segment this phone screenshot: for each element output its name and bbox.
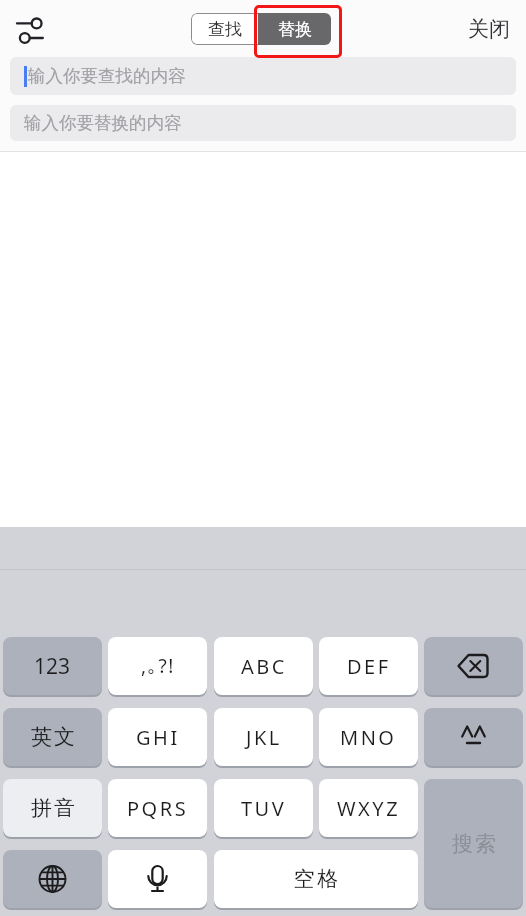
- staticText: 拼音: [30, 795, 76, 821]
- staticText: 英文: [30, 724, 76, 750]
- button[interactable]: GHI: [108, 708, 207, 766]
- button[interactable]: ,｡?!: [108, 637, 207, 695]
- button[interactable]: 替换: [258, 13, 331, 45]
- staticText: 关闭: [468, 16, 510, 42]
- staticText: 搜索: [451, 831, 497, 857]
- staticText: ABC: [241, 653, 287, 680]
- button[interactable]: ABC: [214, 637, 313, 695]
- staticText: DEF: [347, 653, 391, 680]
- button[interactable]: 查找: [191, 13, 259, 45]
- button[interactable]: MNO: [319, 708, 418, 766]
- button[interactable]: 输入你要替换的内容: [10, 105, 516, 141]
- staticText: GHI: [136, 724, 180, 751]
- staticText: PQRS: [127, 795, 189, 822]
- staticText: 输入你要替换的内容: [24, 112, 182, 134]
- button[interactable]: [424, 708, 523, 766]
- staticText: MNO: [340, 724, 397, 751]
- button[interactable]: [3, 850, 102, 908]
- staticText: JKL: [246, 724, 282, 751]
- staticText: 查找: [208, 19, 242, 40]
- button[interactable]: 关闭: [448, 11, 510, 46]
- button[interactable]: DEF: [319, 637, 418, 695]
- button[interactable]: [108, 850, 207, 908]
- staticText: 输入你要查找的内容: [28, 65, 186, 87]
- staticText: 替换: [278, 19, 312, 40]
- staticText: 123: [34, 652, 71, 681]
- button[interactable]: [424, 637, 523, 695]
- button[interactable]: 空格: [214, 850, 418, 908]
- button[interactable]: TUV: [214, 779, 313, 837]
- staticText: WXYZ: [337, 795, 401, 822]
- button[interactable]: 输入你要查找的内容: [10, 57, 516, 95]
- button[interactable]: 英文: [3, 708, 102, 766]
- button[interactable]: 拼音: [3, 779, 102, 837]
- button[interactable]: PQRS: [108, 779, 207, 837]
- staticText: TUV: [241, 795, 287, 822]
- button[interactable]: [8, 7, 52, 51]
- staticText: 空格: [292, 866, 340, 892]
- button[interactable]: 123: [3, 637, 102, 695]
- button[interactable]: JKL: [214, 708, 313, 766]
- button[interactable]: WXYZ: [319, 779, 418, 837]
- button[interactable]: 搜索: [424, 779, 523, 908]
- staticText: ,｡?!: [141, 653, 175, 679]
